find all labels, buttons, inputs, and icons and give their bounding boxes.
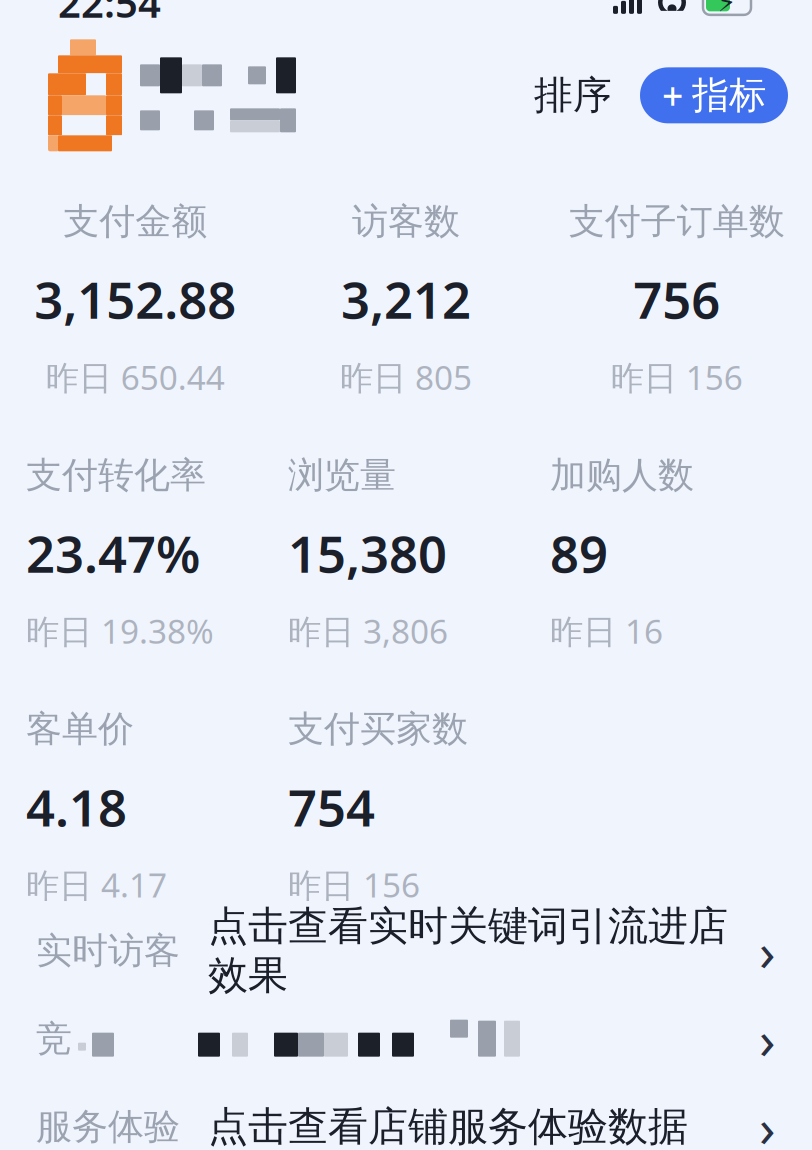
staticText: 22:54 xyxy=(58,0,161,29)
staticText: › xyxy=(759,915,776,986)
staticText: 访客数 xyxy=(352,199,460,244)
staticText: 排序 xyxy=(534,72,612,119)
staticText: 15,380 xyxy=(288,519,447,587)
staticText: 加购人数 xyxy=(550,453,694,497)
staticText: 昨日 3,806 xyxy=(288,609,448,653)
staticText: 昨日 19.38% xyxy=(26,609,214,653)
staticText: 客单价 xyxy=(26,707,134,751)
staticText: 昨日 805 xyxy=(340,355,472,399)
staticText: 支付买家数 xyxy=(288,707,468,751)
button[interactable]: 竞争情报 xyxy=(0,995,812,1083)
button[interactable]: + xyxy=(640,67,788,123)
staticText: 23.47% xyxy=(26,519,200,587)
staticText: 实时访客 xyxy=(36,928,180,973)
staticText: 点击查看实时关键词引流进店效果 xyxy=(208,901,728,1000)
staticText: 昨日 16 xyxy=(550,609,663,653)
staticText: 昨日 650.44 xyxy=(46,355,225,399)
staticText: 756 xyxy=(633,266,720,333)
staticText: 89 xyxy=(550,519,608,587)
staticText: ⚡︎ xyxy=(717,0,736,17)
staticText: 点击查看店铺服务体验数据 xyxy=(208,1102,688,1150)
staticText: 昨日 156 xyxy=(611,355,743,399)
staticText: 浏览量 xyxy=(288,453,396,497)
staticText: 3,152.88 xyxy=(34,266,236,333)
staticText: 754 xyxy=(288,773,375,840)
button[interactable]: 服务体验 xyxy=(0,1083,812,1150)
staticText: 昨日 156 xyxy=(288,862,420,907)
staticText: 支付金额 xyxy=(63,199,207,244)
staticText: 竞 xyxy=(36,1016,72,1061)
staticText: 服务体验 xyxy=(36,1104,180,1149)
staticText: 3,212 xyxy=(341,266,471,333)
staticText: 支付子订单数 xyxy=(569,199,785,244)
staticText: 4.18 xyxy=(26,773,127,840)
staticText: › xyxy=(759,1091,776,1150)
button[interactable]: 实时访客 xyxy=(0,907,812,995)
staticText: 昨日 4.17 xyxy=(26,862,167,907)
button[interactable]: 排序 xyxy=(528,64,618,127)
staticText: › xyxy=(759,1003,776,1074)
staticText: 支付转化率 xyxy=(26,453,206,497)
staticText: + xyxy=(662,71,683,120)
staticText: 指标 xyxy=(692,72,766,118)
